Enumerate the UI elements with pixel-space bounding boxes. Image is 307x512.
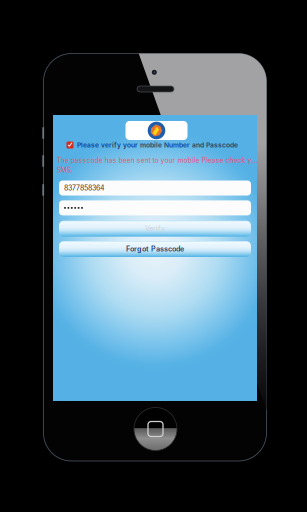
button[interactable] <box>59 200 251 215</box>
button[interactable]: Forgot Passcode <box>59 241 251 257</box>
staticText: Please verify your mobile Number and Pas… <box>77 141 238 149</box>
button[interactable]: 8377858364 <box>59 180 251 195</box>
staticText: Verify <box>145 224 165 233</box>
staticText: The passcode has been sent to your mobil… <box>56 156 260 164</box>
button[interactable]: Verify <box>59 221 251 237</box>
button[interactable]: Home <box>134 407 177 450</box>
staticText: 8377858364 <box>64 184 104 192</box>
staticText: SMS. <box>56 166 72 174</box>
staticText: Forgot Passcode <box>126 245 184 253</box>
